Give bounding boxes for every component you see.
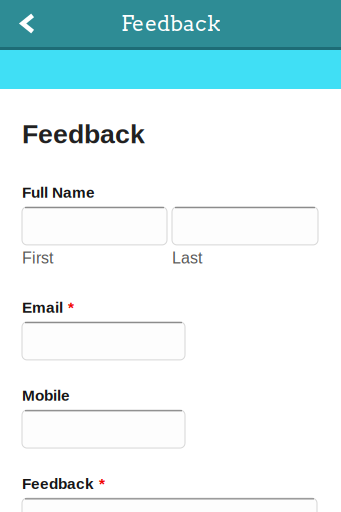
- button[interactable]: Back: [0, 0, 55, 47]
- staticText: Mobile: [22, 387, 70, 404]
- staticText: Email: [22, 299, 63, 316]
- staticText: First: [22, 249, 53, 267]
- staticText: Last: [172, 249, 202, 267]
- staticText: *: [99, 475, 105, 492]
- staticText: Full Name: [22, 184, 95, 201]
- staticText: *: [68, 299, 74, 316]
- staticText: Feedback: [22, 475, 94, 492]
- staticText: Feedback: [121, 11, 220, 36]
- staticText: Feedback: [22, 119, 145, 149]
